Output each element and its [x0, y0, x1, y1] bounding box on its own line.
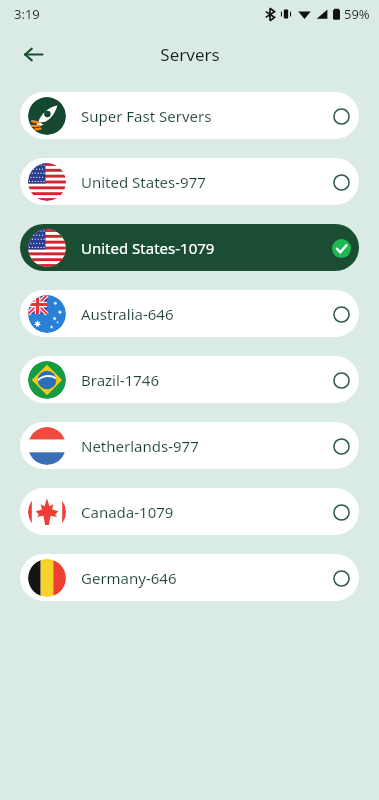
- button[interactable]: Canada-1079: [20, 488, 359, 535]
- staticText: Brazil-1746: [81, 370, 325, 390]
- button[interactable]: Netherlands-977: [20, 422, 359, 469]
- staticText: Super Fast Servers: [81, 106, 325, 126]
- button[interactable]: Brazil-1746: [20, 356, 359, 403]
- staticText: Australia-646: [81, 304, 325, 324]
- staticText: Canada-1079: [81, 502, 325, 522]
- button[interactable]: Australia-646: [20, 290, 359, 337]
- staticText: Servers: [160, 43, 220, 66]
- staticText: United States-1079: [81, 238, 325, 258]
- staticText: Germany-646: [81, 568, 325, 588]
- button[interactable]: Super Fast Servers: [20, 92, 359, 139]
- staticText: 59%: [344, 5, 370, 23]
- button[interactable]: United States-1079: [20, 224, 359, 271]
- button[interactable]: Back: [14, 35, 52, 73]
- staticText: 3:19: [14, 5, 40, 23]
- staticText: Netherlands-977: [81, 436, 325, 456]
- button[interactable]: United States-977: [20, 158, 359, 205]
- staticText: United States-977: [81, 172, 325, 192]
- button[interactable]: Germany-646: [20, 554, 359, 601]
